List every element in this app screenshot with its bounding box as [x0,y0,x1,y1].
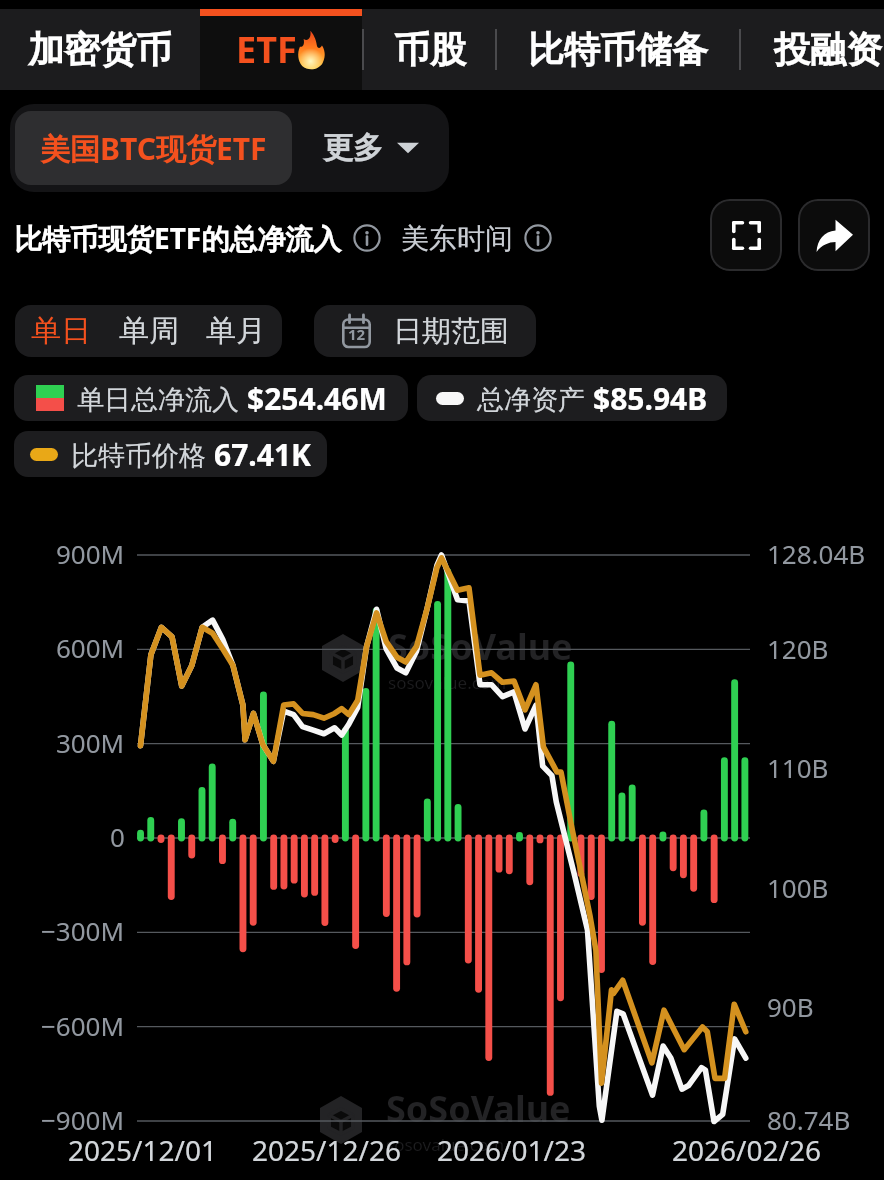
staticText: 120B [767,631,829,666]
staticText: −300M [41,913,125,948]
staticText: 128.04B [767,536,866,571]
staticText: 80.74B [767,1102,851,1137]
button[interactable]: 比特币价格 [14,431,327,477]
staticText: 2026/02/26 [672,1131,821,1169]
staticText: 单月 [206,312,266,350]
staticText: 900M [56,536,125,571]
staticText: 加密货币 [28,27,172,72]
staticText: SoSoValue [386,1084,571,1133]
staticText: sosovalue.com [386,1133,505,1156]
button[interactable]: 投融资 [741,9,884,90]
button[interactable]: 单日总净流入 [14,375,408,421]
button[interactable]: 比特币储备 [497,9,739,90]
button[interactable]: 总净资产 [417,375,727,421]
staticText: −600M [41,1008,125,1043]
staticText: 比特币储备 [528,27,708,72]
staticText: 单周 [119,312,179,350]
staticText: 110B [767,750,829,785]
staticText: 更多 [323,129,383,167]
staticText: 投融资 [774,27,882,72]
staticText: sosovalue.com [388,671,507,694]
button[interactable]: 单周 [117,310,181,352]
button[interactable]: 更多 [297,104,449,192]
button[interactable]: 美国BTC现货ETF [15,111,292,185]
staticText: 2026/01/23 [437,1131,586,1169]
staticText: 600M [56,630,125,665]
staticText: SoSoValue [388,622,573,671]
staticText: 2025/12/26 [252,1131,401,1169]
staticText: 总净资产 [477,380,593,417]
staticText: 300M [56,725,125,760]
staticText: $85.94B [593,378,708,419]
button[interactable]: 币股 [364,9,495,90]
button[interactable]: 加密货币 [0,9,200,90]
staticText: ETF [236,25,297,74]
staticText: 日期范围 [393,313,509,350]
staticText: 美国BTC现货ETF [40,128,267,169]
staticText: 2025/12/01 [68,1131,217,1169]
staticText: 90B [767,989,814,1024]
button[interactable]: ETF [200,9,362,90]
staticText: 单日 [31,312,91,350]
staticText: 比特币现货ETF的总净流入 [14,219,342,257]
staticText: −900M [41,1102,125,1137]
staticText: $254.46M [247,378,387,419]
staticText: 100B [767,870,829,905]
staticText: 0 [110,819,125,854]
button[interactable]: 单月 [204,310,268,352]
staticText: 12 [348,324,366,344]
button[interactable]: Fullscreen [710,199,782,271]
button[interactable]: 单日 [29,310,93,352]
staticText: 美东时间 [401,221,513,256]
staticText: 67.41K [214,434,311,475]
staticText: 币股 [394,27,466,72]
button[interactable]: Share [798,199,870,271]
button[interactable]: 12 [314,305,536,357]
staticText: 比特币价格 [71,436,214,473]
staticText: 单日总净流入 [77,380,247,417]
